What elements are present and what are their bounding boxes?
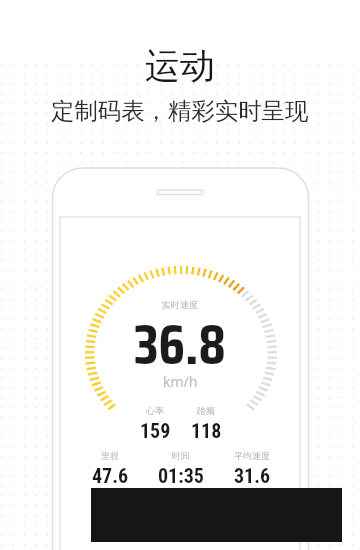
staticText: 时间 xyxy=(172,450,190,461)
staticText: 47.6 xyxy=(92,464,129,487)
staticText: 36.8 xyxy=(134,300,226,388)
staticText: 踏频 xyxy=(197,405,215,416)
staticText: 实时速度 xyxy=(162,299,198,310)
staticText: 平均速度 xyxy=(234,450,270,461)
staticText: 运动 xyxy=(145,44,215,88)
staticText: 里程 xyxy=(101,450,119,461)
staticText: 01:35 xyxy=(158,464,204,487)
staticText: 118 xyxy=(191,419,222,442)
staticText: 159 xyxy=(140,419,171,442)
staticText: 定制码表，精彩实时呈现 xyxy=(51,96,309,125)
staticText: 31.6 xyxy=(234,464,271,487)
staticText: km/h xyxy=(163,372,198,391)
staticText: 心率 xyxy=(146,405,164,416)
